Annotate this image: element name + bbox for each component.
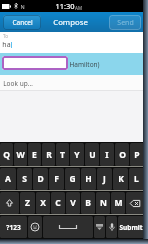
button[interactable]: O xyxy=(115,143,129,166)
staticText: F xyxy=(54,173,59,185)
button[interactable]: ?123 xyxy=(0,216,27,238)
staticText: ?123 xyxy=(6,223,21,232)
staticText: E xyxy=(32,149,37,161)
staticText: I xyxy=(105,149,109,161)
button[interactable]: M xyxy=(111,192,125,214)
staticText: To xyxy=(3,33,8,39)
staticText: AM xyxy=(75,5,82,11)
staticText: D xyxy=(37,173,44,185)
staticText: X xyxy=(40,197,46,209)
button[interactable]: R xyxy=(42,143,55,166)
button[interactable]: F xyxy=(49,168,64,190)
button[interactable]: P xyxy=(130,143,144,166)
staticText: K xyxy=(118,173,124,185)
staticText: J xyxy=(103,173,106,185)
button[interactable]: Emoji xyxy=(28,216,42,238)
staticText: L xyxy=(134,173,139,185)
button[interactable]: Cancel xyxy=(3,15,41,30)
button[interactable]: A xyxy=(0,168,16,190)
button[interactable]: Hamilton) xyxy=(0,53,144,75)
button[interactable]: H xyxy=(81,168,96,190)
button[interactable]: C xyxy=(51,192,65,214)
staticText: C xyxy=(55,197,61,209)
staticText: B xyxy=(85,197,91,209)
staticText: V xyxy=(70,197,76,209)
staticText: Y xyxy=(74,149,80,161)
staticText: N xyxy=(20,3,25,10)
button[interactable]: Shift xyxy=(0,192,19,214)
button[interactable]: Backspace xyxy=(126,192,144,214)
button[interactable]: D xyxy=(33,168,48,190)
staticText: H xyxy=(85,173,92,185)
staticText: Hamilton) xyxy=(69,60,100,69)
staticText: Cancel xyxy=(12,18,33,27)
staticText: O xyxy=(119,149,126,161)
button[interactable]: J xyxy=(97,168,112,190)
button[interactable]: N xyxy=(96,192,110,214)
staticText: 11:30 xyxy=(55,1,75,11)
button[interactable]: W xyxy=(14,143,27,166)
button[interactable]: Q xyxy=(0,143,13,166)
button[interactable]: V xyxy=(66,192,80,214)
button[interactable]: Y xyxy=(70,143,84,166)
button[interactable]: Send xyxy=(109,15,141,30)
staticText: R xyxy=(46,149,52,161)
staticText: W xyxy=(16,149,25,161)
staticText: N xyxy=(100,197,107,209)
button[interactable]: U xyxy=(85,143,99,166)
button[interactable]: X xyxy=(36,192,50,214)
button[interactable]: Voice input xyxy=(106,216,117,238)
button[interactable]: E xyxy=(28,143,41,166)
button[interactable]: T xyxy=(56,143,69,166)
button[interactable]: Look up… xyxy=(0,75,144,91)
button[interactable]: Submit xyxy=(118,216,144,238)
staticText: G xyxy=(69,173,76,185)
button[interactable]: I xyxy=(100,143,114,166)
button[interactable]: Hide keyboard xyxy=(94,216,105,238)
staticText: S xyxy=(22,173,27,185)
staticText: P xyxy=(134,149,140,161)
staticText: U xyxy=(89,149,96,161)
staticText: Q xyxy=(3,149,10,161)
staticText: M xyxy=(114,197,123,209)
staticText: ha xyxy=(2,40,11,50)
button[interactable]: B xyxy=(81,192,95,214)
staticText: Submit xyxy=(119,223,143,232)
staticText: A xyxy=(5,173,11,185)
staticText: Compose xyxy=(53,17,88,28)
staticText: Send xyxy=(117,18,134,28)
button[interactable]: L xyxy=(129,168,144,190)
staticText: Look up… xyxy=(3,79,33,88)
button[interactable]: Z xyxy=(20,192,35,214)
staticText: Z xyxy=(25,197,30,209)
staticText: T xyxy=(60,149,65,161)
button[interactable]: S xyxy=(17,168,32,190)
button[interactable]: G xyxy=(65,168,80,190)
button[interactable]: K xyxy=(113,168,128,190)
button[interactable]: Space xyxy=(43,216,93,238)
